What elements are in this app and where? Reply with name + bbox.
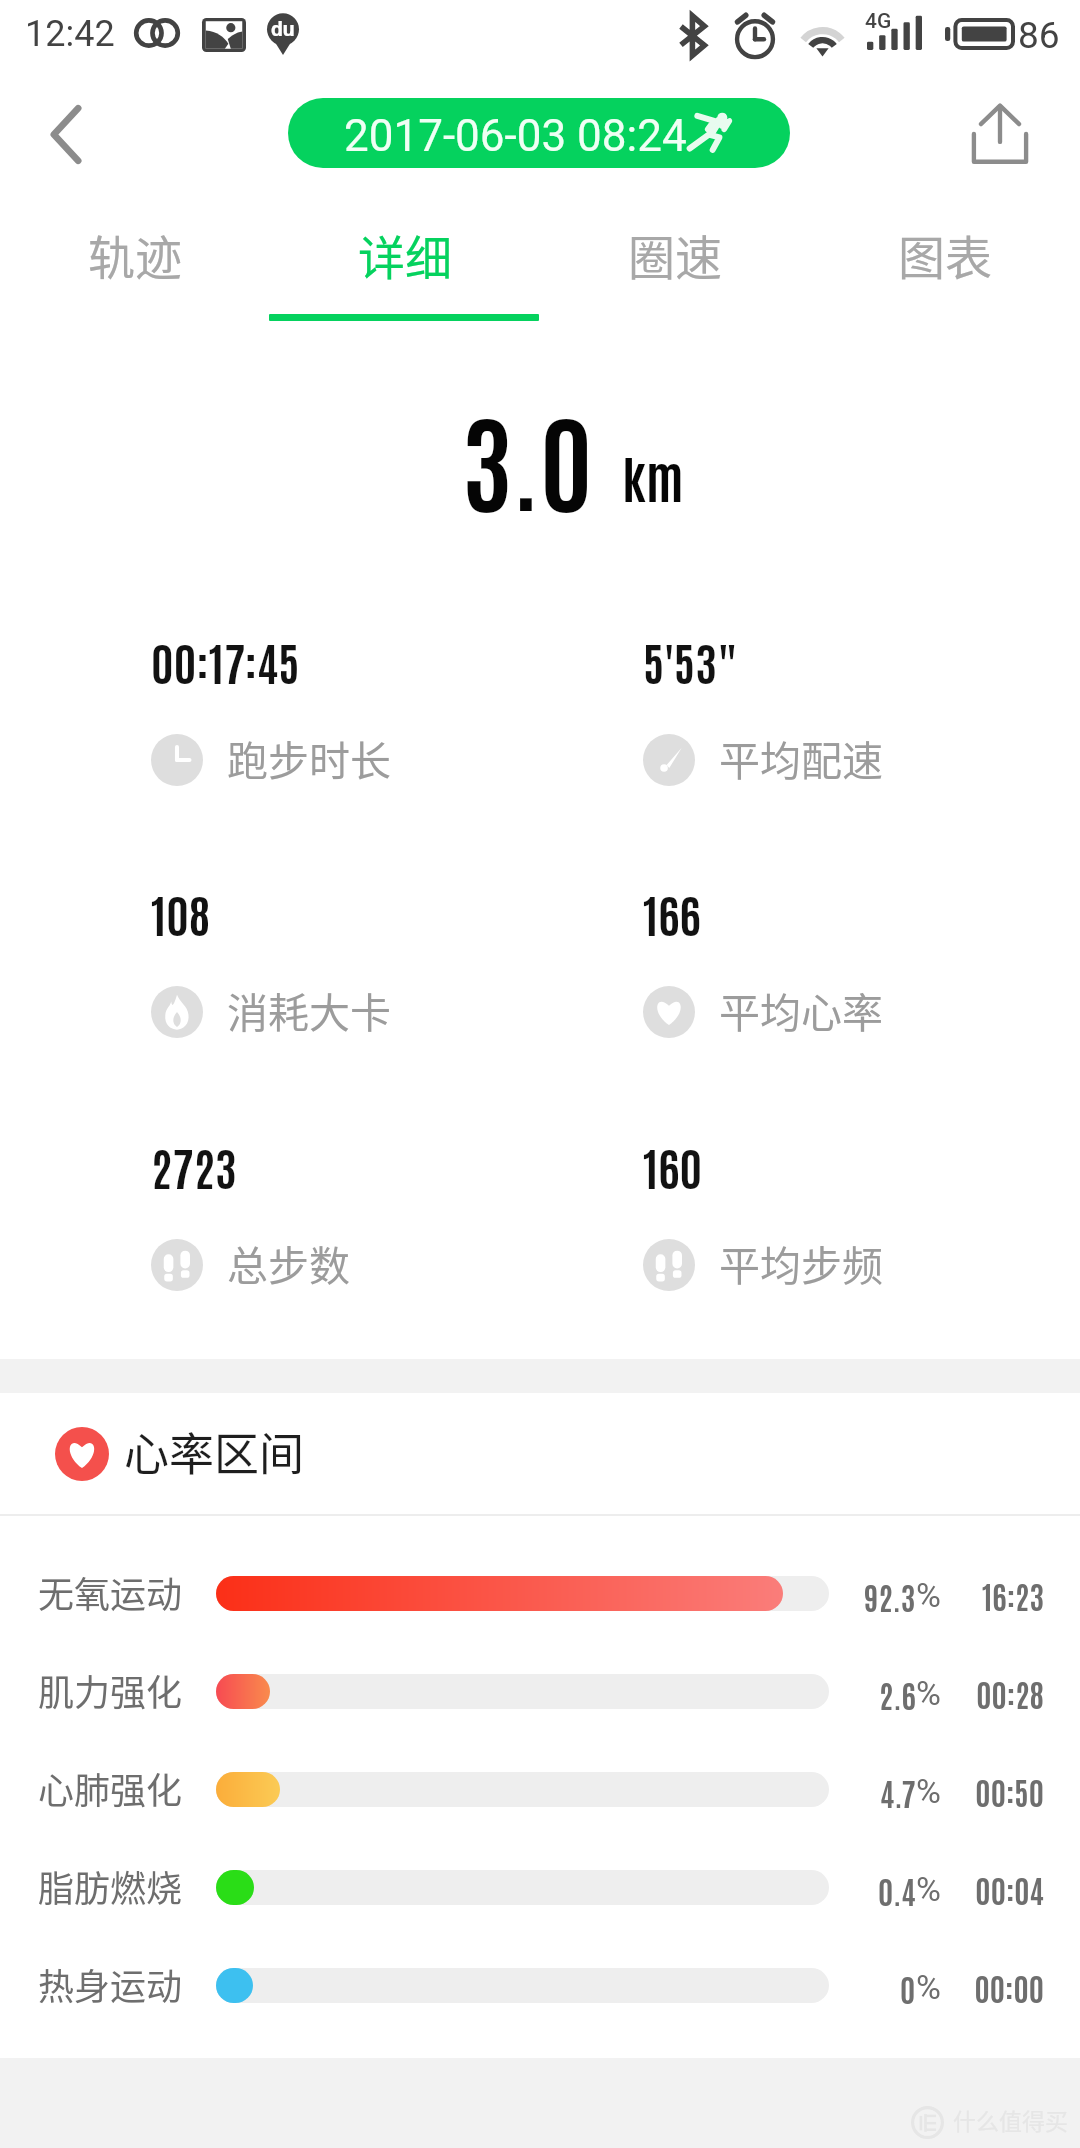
staticText: 图表 xyxy=(898,220,992,288)
staticText: 12:42 xyxy=(25,13,115,55)
staticText: 跑步时长 xyxy=(227,728,391,787)
staticText: 00:28 xyxy=(884,1673,1044,1713)
staticText: % xyxy=(916,1771,941,1811)
staticText: 0.4 xyxy=(878,1870,916,1910)
staticText: 00:17:45 xyxy=(151,631,300,691)
staticText: 92.3 xyxy=(864,1576,916,1616)
staticText: 心肺强化 xyxy=(38,1762,183,1814)
staticText: 2017-06-03 08:24 xyxy=(344,110,687,162)
staticText: 热身运动 xyxy=(38,1958,183,2010)
staticText: 总步数 xyxy=(227,1233,350,1292)
staticText: % xyxy=(916,1673,941,1713)
staticText: 心率区间 xyxy=(124,1419,305,1484)
staticText: 3.0 xyxy=(462,387,593,525)
staticText: 86 xyxy=(1018,14,1060,57)
staticText: 肌力强化 xyxy=(38,1664,183,1716)
staticText: 4.7 xyxy=(880,1772,916,1812)
staticText: 圈速 xyxy=(628,220,722,288)
staticText: 脂肪燃烧 xyxy=(38,1860,183,1912)
button[interactable]: 图表 xyxy=(810,208,1080,328)
staticText: 无氧运动 xyxy=(38,1566,183,1618)
staticText: 2723 xyxy=(151,1136,237,1196)
button[interactable]: 圈速 xyxy=(540,208,810,328)
staticText: 平均心率 xyxy=(719,980,883,1039)
staticText: 消耗大卡 xyxy=(227,980,391,1039)
staticText: 4G xyxy=(865,9,892,34)
staticText: 2.6 xyxy=(879,1674,916,1714)
staticText: 00:00 xyxy=(884,1967,1044,2007)
button[interactable]: 详细 xyxy=(270,208,540,328)
staticText: 166 xyxy=(643,883,701,943)
staticText: % xyxy=(916,1575,941,1615)
staticText: 00:04 xyxy=(884,1869,1044,1909)
staticText: 00:50 xyxy=(884,1771,1044,1811)
staticText: km xyxy=(622,443,684,509)
staticText: % xyxy=(916,1869,941,1909)
staticText: % xyxy=(916,1967,941,2007)
staticText: 160 xyxy=(643,1136,703,1196)
staticText: 什么值得买 xyxy=(953,2103,1068,2136)
staticText: 16:23 xyxy=(884,1575,1044,1615)
staticText: 0 xyxy=(900,1968,916,2008)
staticText: 详细 xyxy=(358,220,452,288)
button[interactable]: 2017-06-03 08:24 xyxy=(288,98,790,168)
staticText: 108 xyxy=(151,883,211,943)
button[interactable]: Share xyxy=(962,96,1038,172)
staticText: du xyxy=(271,17,295,42)
staticText: 轨迹 xyxy=(88,220,182,288)
button[interactable]: Back xyxy=(30,98,102,170)
button[interactable]: 心率区间 xyxy=(0,1393,1080,1514)
button[interactable]: 轨迹 xyxy=(0,208,270,328)
staticText: 平均配速 xyxy=(719,728,883,787)
staticText: 平均步频 xyxy=(719,1233,883,1292)
staticText: 5'53" xyxy=(643,631,738,691)
